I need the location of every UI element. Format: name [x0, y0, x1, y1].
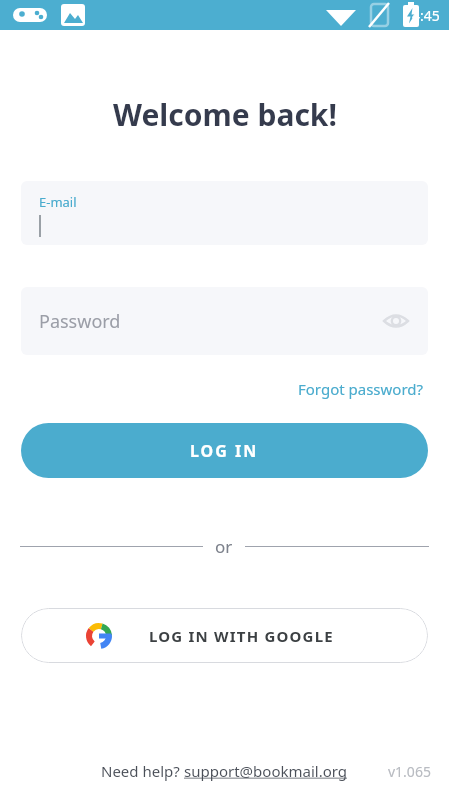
staticText: LOG IN: [190, 440, 259, 462]
button[interactable]: LOG IN: [21, 423, 428, 478]
button[interactable]: Forgot password?: [294, 375, 428, 403]
staticText: Welcome back!: [113, 94, 337, 135]
staticText: Password: [39, 309, 121, 334]
staticText: LOG IN WITH GOOGLE: [149, 626, 334, 646]
button[interactable]: Password: [21, 287, 428, 355]
staticText: E-mail: [39, 193, 77, 211]
button[interactable]: E-mail: [21, 181, 428, 245]
button[interactable]: LOG IN WITH GOOGLE: [21, 608, 428, 663]
staticText: v1.065: [388, 762, 431, 781]
staticText: Forgot password?: [298, 379, 424, 399]
staticText: 4:45: [412, 6, 440, 25]
button[interactable]: support@bookmail.org: [184, 761, 348, 781]
staticText: support@bookmail.org: [184, 761, 348, 781]
staticText: or: [215, 535, 233, 558]
button[interactable]: Show password: [376, 301, 416, 341]
staticText: Need help?: [101, 761, 184, 781]
